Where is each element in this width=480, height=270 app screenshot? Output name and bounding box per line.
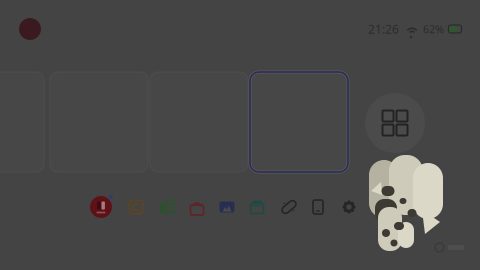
- button[interactable]: Controllers: [242, 194, 272, 220]
- button[interactable]: Joy-Con: [274, 194, 304, 220]
- button[interactable]: All Software: [365, 93, 425, 153]
- button[interactable]: Nintendo eShop: [182, 194, 212, 220]
- staticText: 62%: [423, 22, 444, 36]
- button[interactable]: Game: [250, 72, 348, 172]
- button[interactable]: Sleep Mode: [303, 194, 333, 220]
- button[interactable]: User profile: [19, 18, 41, 40]
- staticText: 21:26: [368, 21, 399, 37]
- button[interactable]: Power: [365, 194, 395, 220]
- button[interactable]: News: [152, 194, 182, 220]
- button[interactable]: Album: [212, 194, 242, 220]
- button[interactable]: Nintendo Switch Online: [86, 194, 116, 220]
- button[interactable]: Controllers: [121, 194, 151, 220]
- button[interactable]: System Settings: [334, 194, 364, 220]
